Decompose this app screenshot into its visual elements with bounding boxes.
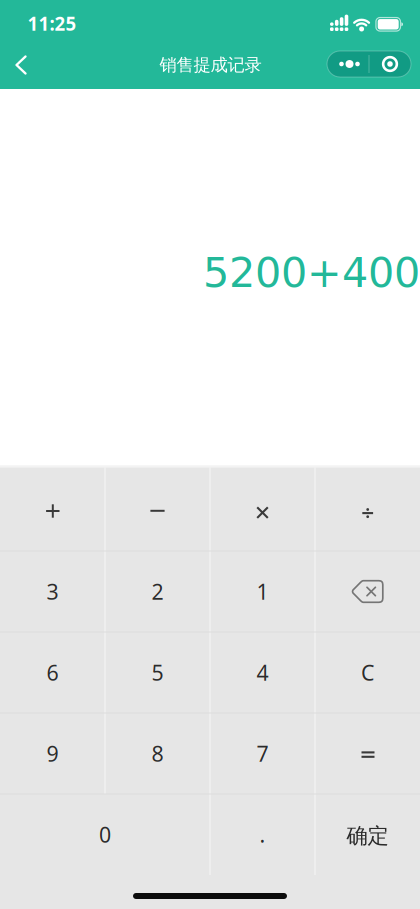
button[interactable]	[327, 51, 369, 77]
button[interactable]: 1	[210, 551, 315, 632]
button[interactable]	[369, 51, 411, 77]
button[interactable]: 7	[210, 713, 315, 794]
button[interactable]: .	[210, 794, 315, 875]
button[interactable]: 8	[105, 713, 210, 794]
staticText: 4	[256, 658, 268, 687]
button[interactable]: 2	[105, 551, 210, 632]
staticText: 9	[46, 739, 58, 768]
staticText: C	[361, 658, 374, 687]
button[interactable]	[210, 468, 315, 551]
button[interactable]: 6	[0, 632, 105, 713]
staticText: 0	[99, 820, 111, 849]
button[interactable]: 确定	[315, 795, 420, 876]
button[interactable]: 4	[210, 632, 315, 713]
staticText: 8	[151, 739, 163, 768]
button[interactable]: 0	[0, 794, 210, 875]
button[interactable]	[315, 551, 420, 632]
staticText: 确定	[346, 823, 388, 849]
staticText: 2	[151, 577, 163, 606]
staticText: 7	[256, 739, 268, 768]
staticText: 5200+400	[203, 249, 420, 297]
staticText: 销售提成记录	[159, 54, 261, 76]
button[interactable]: 5	[105, 632, 210, 713]
button[interactable]: 9	[0, 713, 105, 794]
button[interactable]	[315, 468, 420, 551]
staticText: .	[259, 820, 265, 849]
button[interactable]	[105, 468, 210, 551]
button[interactable]: C	[315, 632, 420, 713]
staticText: 5	[151, 658, 163, 687]
staticText: 3	[46, 577, 58, 606]
staticText: 11:25	[27, 11, 76, 36]
staticText: 6	[46, 658, 58, 687]
staticText: 1	[256, 577, 268, 606]
button[interactable]	[0, 468, 105, 551]
button[interactable]	[0, 43, 43, 87]
button[interactable]: 3	[0, 551, 105, 632]
button[interactable]	[315, 713, 420, 794]
